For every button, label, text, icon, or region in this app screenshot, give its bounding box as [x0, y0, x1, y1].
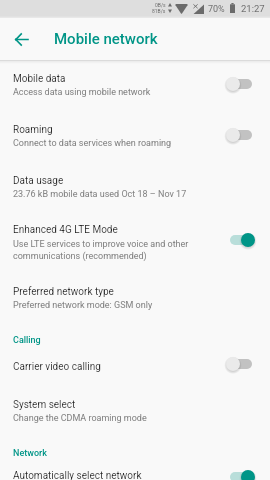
button[interactable] — [0, 460, 270, 480]
button[interactable] — [0, 379, 270, 429]
staticText: Preferred network mode: GSM only — [13, 300, 218, 311]
button[interactable]: Toggle off — [220, 351, 262, 377]
button[interactable]: Toggle off — [220, 122, 262, 148]
button[interactable] — [0, 62, 270, 112]
button[interactable]: System select — [13, 399, 76, 411]
staticText: 70% — [208, 4, 225, 15]
staticText: Calling — [13, 335, 41, 346]
staticText: Change the CDMA roaming mode — [13, 413, 218, 424]
staticText: Connect to data services when roaming — [13, 138, 218, 149]
button[interactable] — [0, 275, 270, 324]
button[interactable]: Data usage — [13, 175, 64, 187]
button[interactable]: Enhanced 4G LTE Mode — [13, 224, 118, 236]
button[interactable] — [0, 213, 270, 275]
staticText: Mobile network — [54, 30, 158, 48]
button[interactable]: Carrier video calling — [13, 361, 101, 373]
staticText: Access data using mobile network — [13, 87, 218, 98]
button[interactable]: Toggle on — [220, 227, 262, 253]
staticText: Network — [13, 448, 47, 459]
button[interactable]: Roaming — [13, 124, 53, 136]
staticText: 21:27 — [241, 3, 265, 14]
staticText: 81B/s — [152, 8, 166, 14]
button[interactable]: Preferred network type — [13, 286, 114, 298]
button[interactable]: Toggle off — [220, 71, 262, 97]
button[interactable]: Back — [7, 25, 35, 53]
button[interactable]: Automatically select network — [13, 470, 142, 480]
button[interactable] — [0, 350, 270, 379]
button[interactable]: Mobile data — [13, 73, 66, 85]
button[interactable] — [0, 163, 270, 213]
staticText: Use LTE services to improve voice and ot… — [13, 239, 218, 261]
button[interactable]: Toggle on — [220, 464, 262, 480]
staticText: 23.76 kB mobile data used Oct 18 – Nov 1… — [13, 189, 218, 200]
staticText: 0B/s — [155, 2, 166, 8]
button[interactable] — [0, 112, 270, 163]
